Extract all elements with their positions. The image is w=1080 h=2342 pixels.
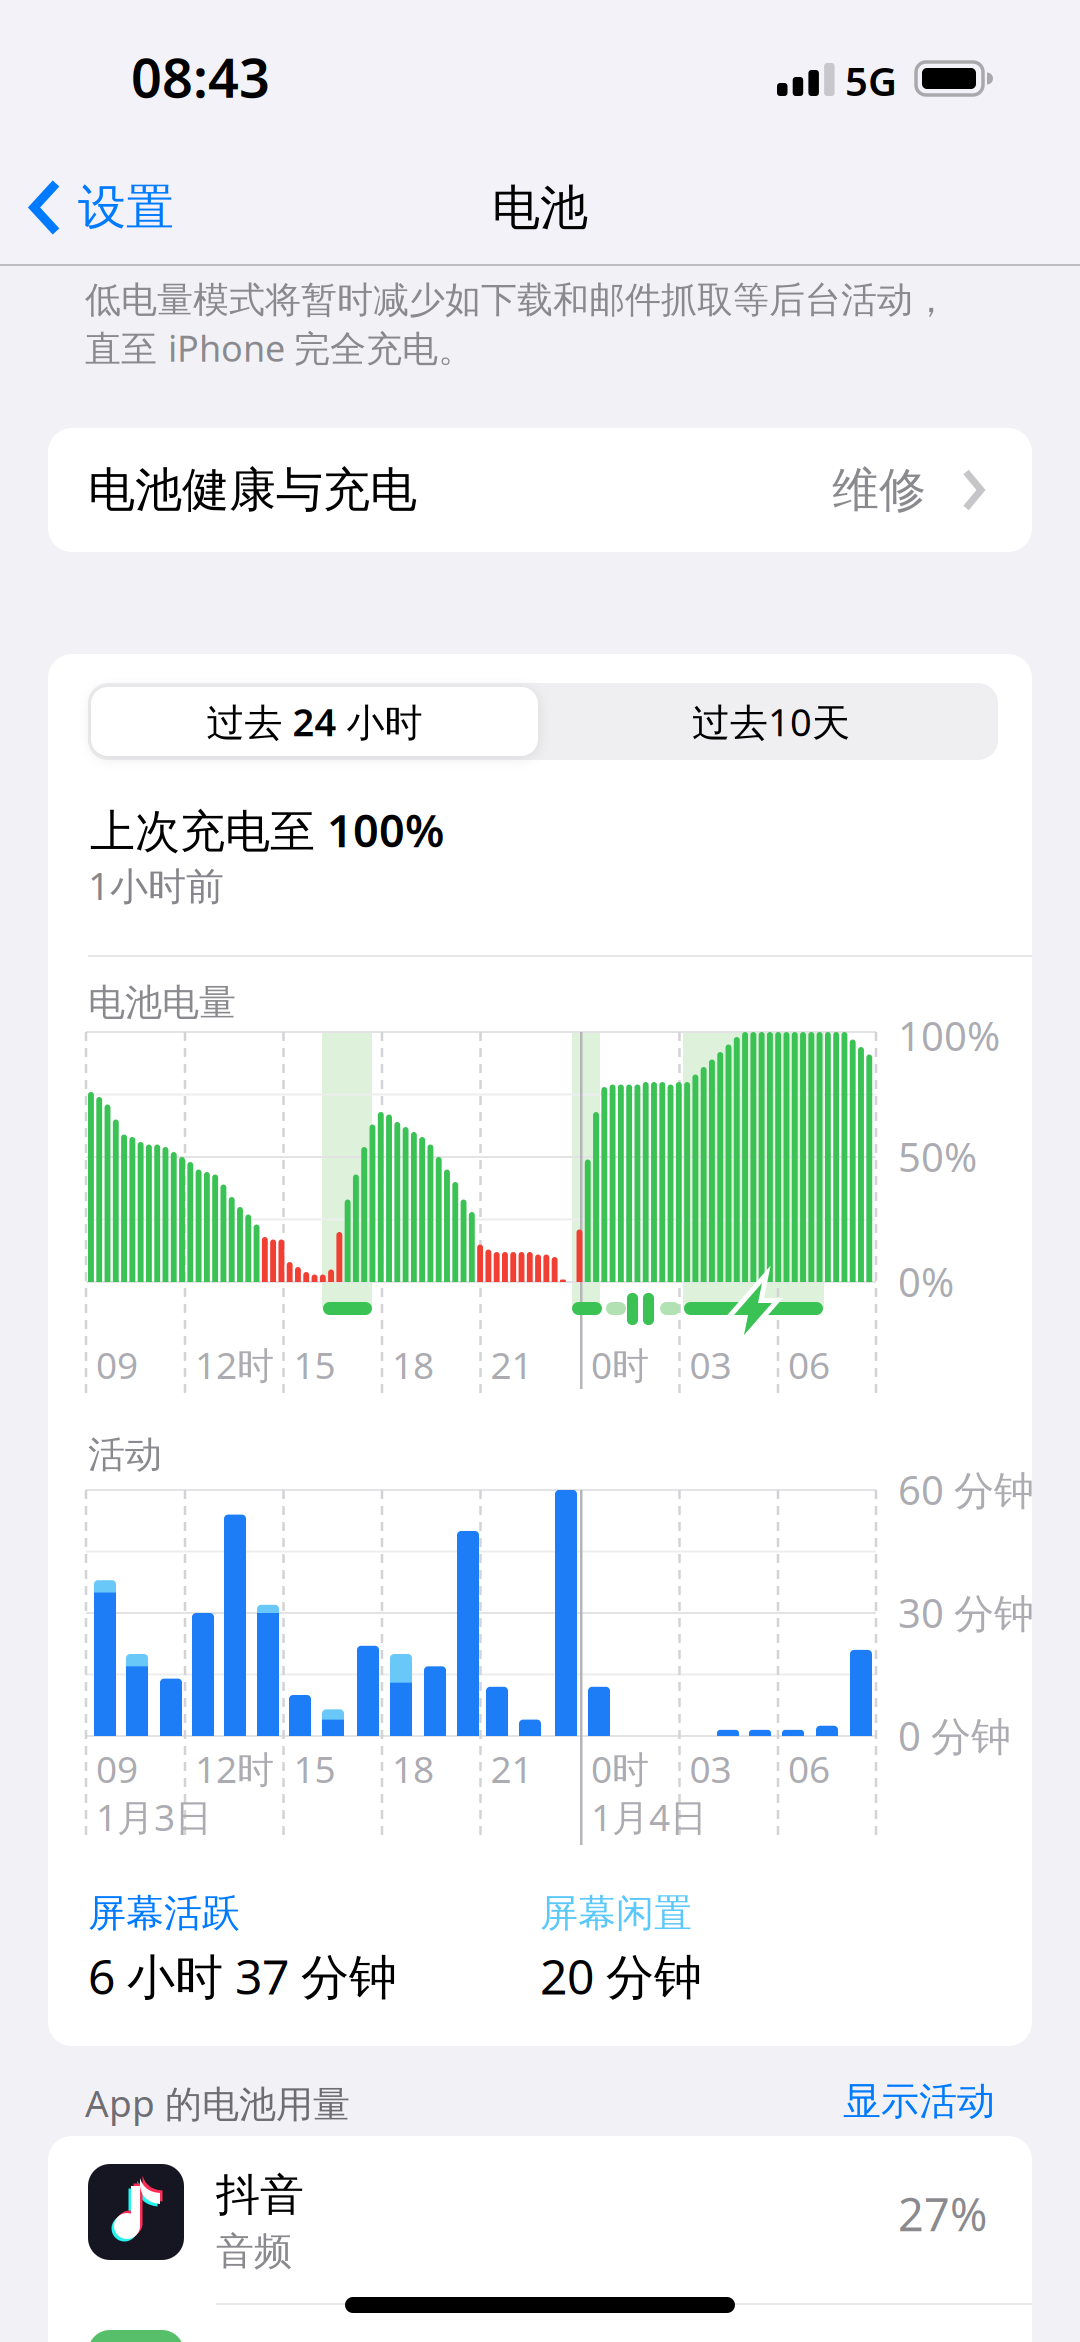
staticText: 21 (490, 1744, 532, 1793)
button[interactable]: 过去 24 小时 (91, 687, 538, 756)
staticText: 维修 (832, 461, 926, 519)
staticText: 0时 (591, 1340, 649, 1389)
staticText: 上次充电至 100% (90, 800, 444, 860)
staticText: 电池电量 (88, 980, 236, 1025)
staticText: 60 分钟 (898, 1463, 1034, 1516)
staticText: 屏幕活跃 (88, 1890, 240, 1937)
button[interactable]: 显示活动 (843, 2078, 995, 2125)
staticText: 0时 (591, 1744, 649, 1793)
staticText: 电池健康与充电 (88, 461, 417, 519)
staticText: 1小时前 (88, 860, 224, 910)
staticText: 12时 (195, 1340, 274, 1389)
staticText: 06 (788, 1744, 830, 1793)
staticText: 0 分钟 (898, 1709, 1011, 1762)
staticText: 06 (788, 1340, 830, 1389)
staticText: 03 (689, 1340, 731, 1389)
staticText: 09 (96, 1744, 138, 1793)
staticText: 6 小时 37 分钟 (88, 1944, 397, 2008)
staticText: 09 (96, 1340, 138, 1389)
staticText: 50% (898, 1130, 977, 1183)
staticText: 0% (898, 1255, 954, 1308)
button[interactable]: 抖音 (48, 2136, 1080, 2342)
staticText: 15 (293, 1744, 335, 1793)
staticText: 屏幕闲置 (540, 1890, 692, 1937)
staticText: 18 (392, 1340, 434, 1389)
button[interactable]: 电池健康与充电 (48, 428, 1032, 552)
staticText: 12时 (195, 1744, 274, 1793)
staticText: 音频 (216, 2228, 292, 2275)
staticText: 03 (689, 1744, 731, 1793)
staticText: 18 (392, 1744, 434, 1793)
staticText: 21 (490, 1340, 532, 1389)
staticText: 过去10天 (692, 696, 850, 747)
button[interactable]: 返回设置 (30, 178, 174, 237)
staticText: 过去 24 小时 (206, 696, 422, 747)
staticText: 直至 iPhone 完全充电。 (85, 324, 474, 372)
staticText: 抖音 (216, 2168, 304, 2222)
staticText: 设置 (78, 178, 174, 237)
staticText: 5G (845, 54, 897, 107)
staticText: 08:43 (131, 41, 270, 113)
staticText: 显示活动 (843, 2078, 995, 2125)
staticText: 15 (293, 1340, 335, 1389)
button[interactable]: 过去10天 (546, 683, 996, 760)
staticText: 30 分钟 (898, 1586, 1034, 1639)
staticText: 活动 (88, 1432, 162, 1477)
staticText: 27% (898, 2184, 987, 2244)
staticText: 1月3日 (96, 1792, 212, 1841)
staticText: App 的电池用量 (85, 2078, 350, 2127)
staticText: 20 分钟 (540, 1944, 702, 2008)
staticText: 1月4日 (591, 1792, 707, 1841)
staticText: 100% (898, 1009, 1000, 1062)
staticText: 电池 (492, 178, 588, 237)
staticText: 低电量模式将暂时减少如下载和邮件抓取等后台活动， (85, 278, 949, 322)
